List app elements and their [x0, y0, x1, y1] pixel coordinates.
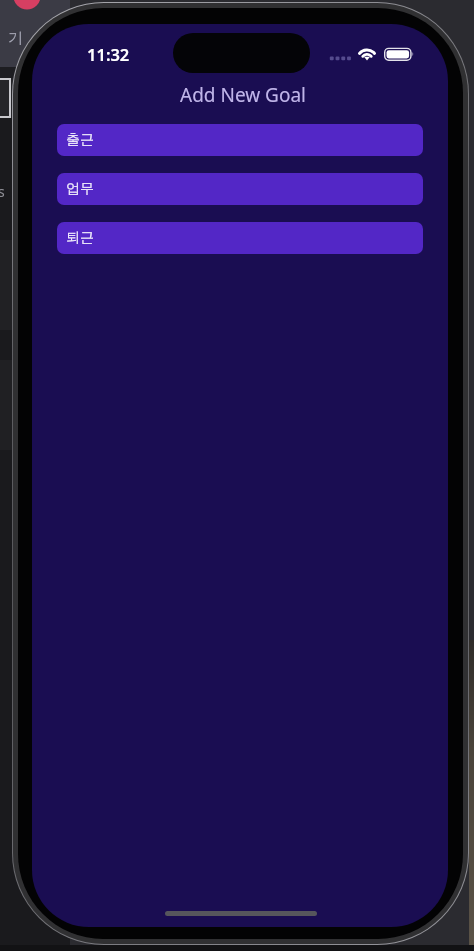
- staticText: 기: [8, 29, 23, 48]
- staticText: 11:32: [87, 43, 130, 65]
- staticText: 퇴근: [66, 229, 94, 247]
- staticText: 출근: [66, 131, 94, 149]
- button[interactable]: 업무: [57, 173, 423, 205]
- staticText: Add New Goal: [35, 82, 448, 108]
- staticText: 업무: [66, 180, 94, 198]
- button[interactable]: 출근: [57, 124, 423, 156]
- button[interactable]: 퇴근: [57, 222, 423, 254]
- staticText: s: [0, 182, 5, 201]
